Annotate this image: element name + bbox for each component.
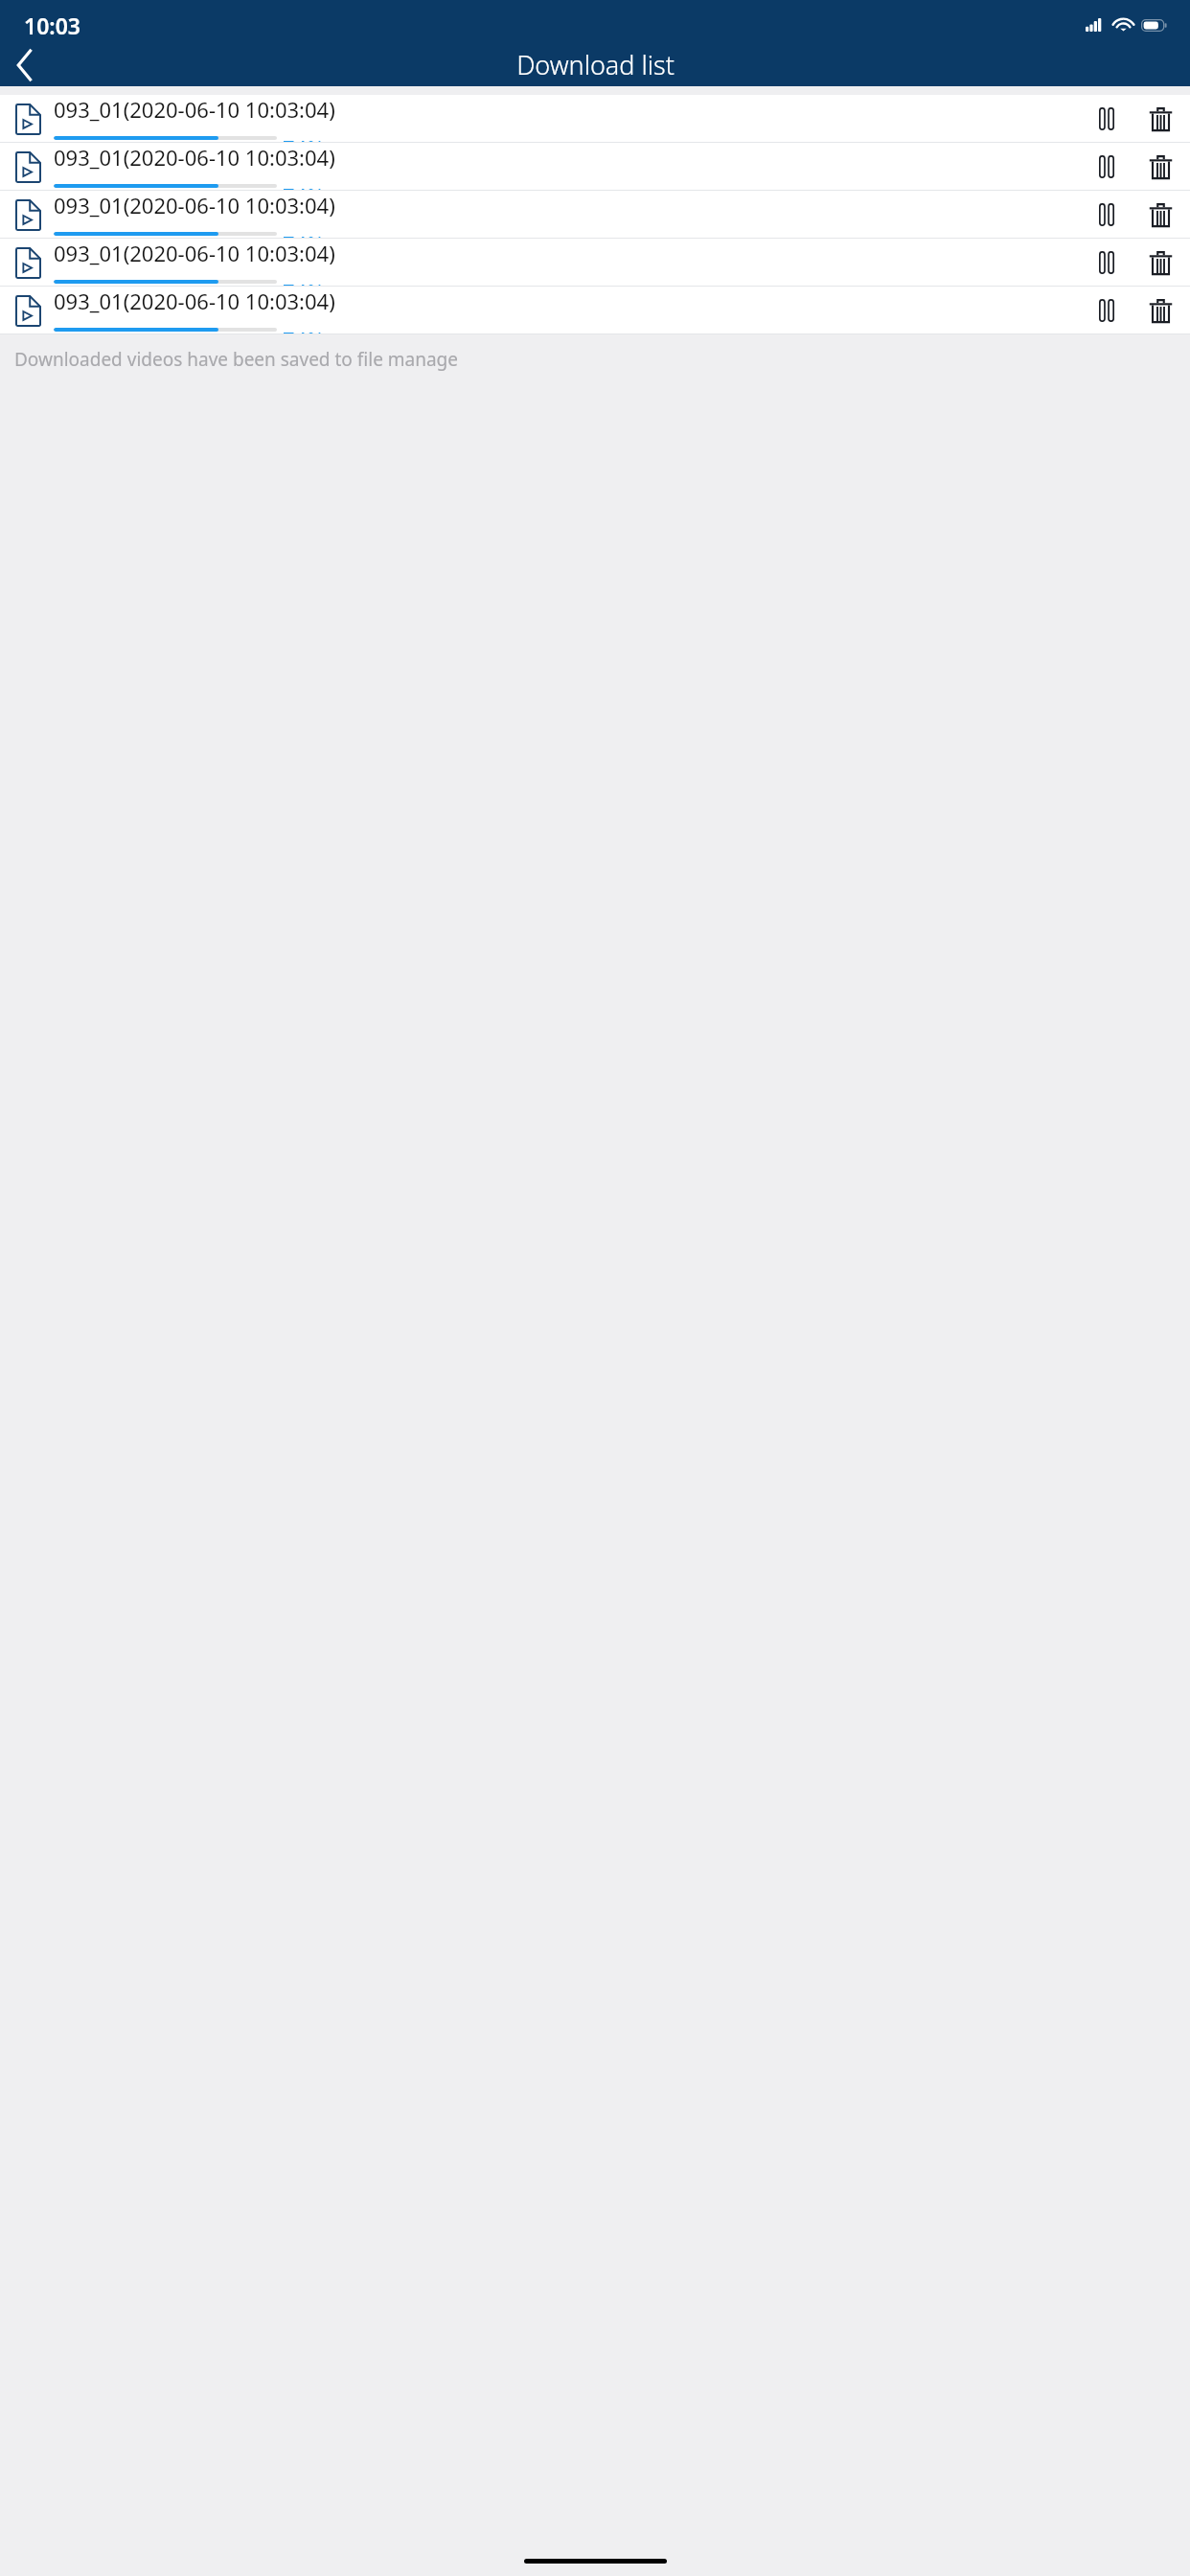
button[interactable]: Video file bbox=[0, 95, 1190, 142]
button[interactable]: Pause bbox=[1087, 99, 1127, 139]
button[interactable]: Delete bbox=[1140, 147, 1180, 187]
staticText: 093_01(2020-06-10 10:03:04) bbox=[54, 143, 335, 172]
staticText: 093_01(2020-06-10 10:03:04) bbox=[54, 239, 335, 267]
staticText: 10:03 bbox=[24, 11, 80, 40]
other: Video file bbox=[11, 246, 44, 279]
button[interactable]: Pause bbox=[1087, 242, 1127, 283]
button[interactable]: Video file bbox=[0, 239, 1190, 286]
other: Video file bbox=[11, 294, 44, 327]
staticText: 74% bbox=[283, 181, 325, 190]
button[interactable]: Delete bbox=[1140, 99, 1180, 139]
staticText: 093_01(2020-06-10 10:03:04) bbox=[54, 191, 335, 219]
staticText: 74% bbox=[283, 133, 325, 142]
staticText: Downloaded videos have been saved to fil… bbox=[14, 347, 459, 372]
staticText: 74% bbox=[283, 325, 325, 333]
button[interactable]: Back bbox=[4, 46, 46, 83]
staticText: 74% bbox=[283, 229, 325, 238]
other: Video file bbox=[11, 150, 44, 183]
staticText: Download list bbox=[516, 47, 675, 82]
staticText: 093_01(2020-06-10 10:03:04) bbox=[54, 287, 335, 315]
button[interactable]: Pause bbox=[1087, 195, 1127, 235]
other: Video file bbox=[11, 103, 44, 135]
staticText: 74% bbox=[283, 277, 325, 286]
button[interactable]: Delete bbox=[1140, 290, 1180, 331]
staticText: 093_01(2020-06-10 10:03:04) bbox=[54, 95, 335, 124]
button[interactable]: Video file bbox=[0, 143, 1190, 190]
button[interactable]: Pause bbox=[1087, 147, 1127, 187]
button[interactable]: Delete bbox=[1140, 242, 1180, 283]
button[interactable]: Pause bbox=[1087, 290, 1127, 331]
button[interactable]: Video file bbox=[0, 191, 1190, 238]
button[interactable]: Video file bbox=[0, 287, 1190, 333]
other: Video file bbox=[11, 198, 44, 231]
button[interactable]: Delete bbox=[1140, 195, 1180, 235]
